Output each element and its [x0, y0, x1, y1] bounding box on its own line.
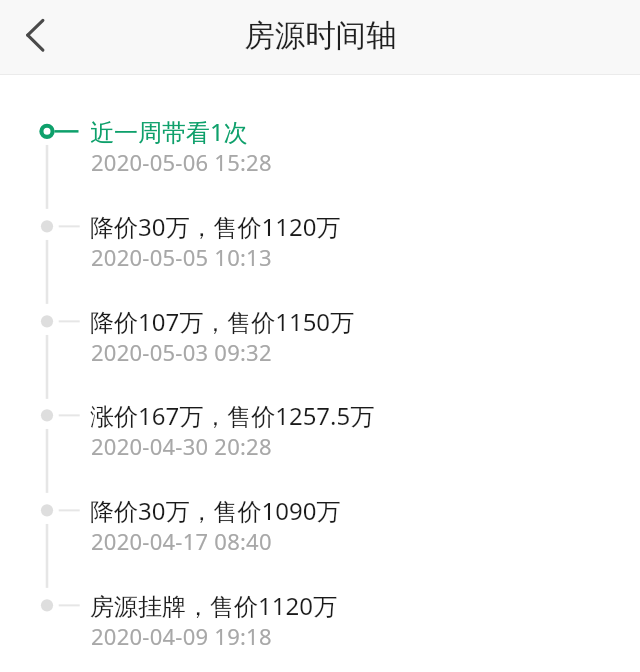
staticText: 2020-05-06 15:28: [91, 147, 272, 177]
button[interactable]: 降价30万，售价1090万: [0, 463, 640, 558]
button[interactable]: 房源挂牌，售价1120万: [0, 558, 640, 653]
staticText: 房源挂牌，售价1120万: [90, 589, 337, 622]
staticText: 涨价167万，售价1257.5万: [90, 399, 375, 432]
button[interactable]: 涨价167万，售价1257.5万: [0, 368, 640, 463]
staticText: 2020-04-09 19:18: [91, 621, 272, 651]
button[interactable]: 降价30万，售价1120万: [0, 179, 640, 274]
staticText: 降价107万，售价1150万: [90, 305, 355, 338]
staticText: 降价30万，售价1120万: [90, 210, 341, 243]
staticText: 降价30万，售价1090万: [90, 494, 341, 527]
staticText: 2020-05-05 10:13: [91, 242, 272, 272]
button[interactable]: Back: [0, 2, 70, 72]
staticText: 2020-05-03 09:32: [91, 337, 272, 367]
button[interactable]: 近一周带看1次: [0, 84, 640, 179]
staticText: 2020-04-17 08:40: [91, 526, 272, 556]
staticText: 近一周带看1次: [90, 115, 248, 148]
staticText: 房源时间轴: [244, 17, 397, 55]
staticText: 2020-04-30 20:28: [91, 431, 272, 461]
button[interactable]: 降价107万，售价1150万: [0, 274, 640, 369]
